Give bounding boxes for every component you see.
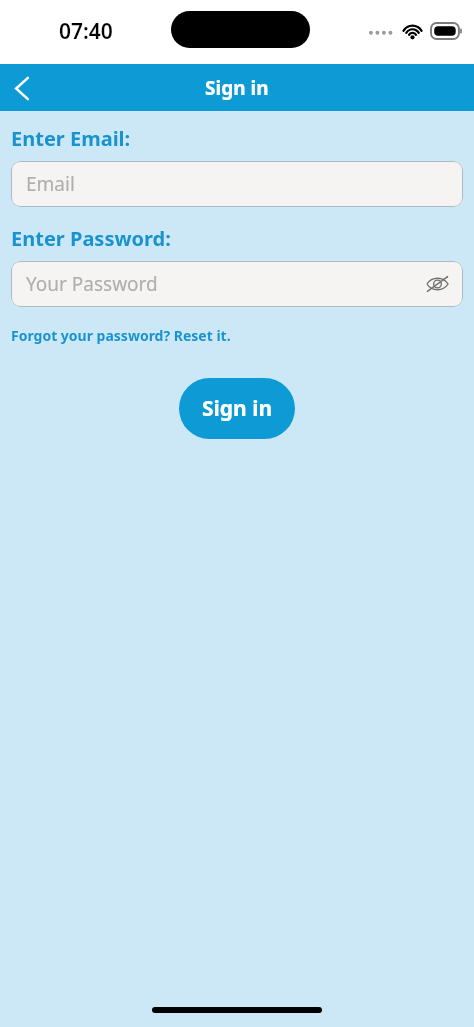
button[interactable]: Sign in — [179, 378, 295, 439]
button[interactable]: Forgot your password? Reset it. — [11, 326, 231, 345]
button[interactable]: Show password — [420, 267, 454, 301]
staticText: 07:40 — [59, 17, 113, 46]
staticText: Enter Email: — [11, 125, 131, 152]
staticText: Enter Password: — [11, 225, 171, 252]
staticText: Email — [26, 171, 75, 197]
button[interactable]: Email — [11, 161, 463, 207]
staticText: Sign in — [202, 394, 273, 423]
staticText: Sign in — [205, 75, 269, 101]
button[interactable]: Your Password — [11, 261, 463, 307]
staticText: Forgot your password? Reset it. — [11, 326, 231, 345]
button[interactable]: Back — [0, 66, 44, 110]
staticText: Your Password — [26, 271, 158, 297]
